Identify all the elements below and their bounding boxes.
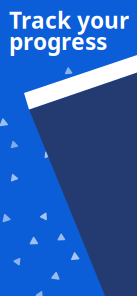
staticText: Track your progress <box>9 5 129 56</box>
